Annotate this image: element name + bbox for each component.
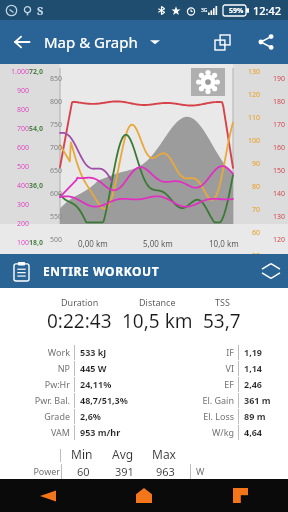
button[interactable]: Map & Graph	[44, 32, 160, 52]
staticText: 59%	[229, 6, 244, 16]
button[interactable]: ENTIRE WORKOUT	[0, 254, 288, 288]
staticText: Map & Graph	[44, 32, 138, 52]
staticText: 2,6%	[80, 410, 101, 422]
staticText: 72,0	[29, 67, 44, 77]
staticText: 80	[243, 182, 260, 192]
staticText: Pwr. Bal.	[34, 394, 70, 406]
staticText: ENTIRE WORKOUT	[43, 263, 160, 279]
staticText: 89 m	[244, 410, 266, 422]
staticText: VAM	[51, 426, 70, 438]
staticText: 60	[77, 464, 90, 479]
staticText: W	[196, 465, 205, 477]
staticText: NP	[57, 362, 70, 374]
staticText: 750	[44, 120, 62, 130]
staticText: 190	[265, 74, 285, 84]
staticText: 140	[265, 189, 285, 199]
staticText: EF	[224, 378, 234, 390]
button[interactable]: Back	[0, 479, 96, 512]
staticText: 3G	[201, 7, 208, 14]
staticText: 200	[3, 219, 29, 229]
button[interactable]: Recent apps	[192, 479, 288, 512]
staticText: 600	[3, 143, 29, 153]
staticText: 110	[243, 113, 260, 123]
staticText: 130	[265, 212, 285, 222]
staticText: 180	[265, 97, 285, 107]
staticText: 10,0 km	[209, 238, 239, 249]
staticText: Pw:Hr	[44, 378, 70, 390]
staticText: 100	[3, 238, 29, 248]
staticText: 170	[265, 120, 285, 130]
staticText: 24,11%	[80, 378, 112, 390]
staticText: 5,00 km	[143, 238, 173, 249]
staticText: 120	[243, 90, 260, 100]
staticText: 2,46	[244, 378, 263, 390]
staticText: Duration	[61, 296, 99, 308]
staticText: 1,14	[244, 362, 263, 374]
staticText: 600	[44, 189, 62, 199]
staticText: 160	[265, 143, 285, 153]
staticText: 963	[156, 464, 175, 479]
staticText: El. Gain	[202, 394, 234, 406]
button[interactable]: Back	[0, 20, 44, 64]
staticText: IF	[226, 346, 234, 358]
staticText: 10,5 km	[122, 308, 193, 334]
staticText: 130	[243, 67, 260, 77]
staticText: 700	[44, 143, 62, 153]
staticText: 300	[3, 200, 29, 210]
staticText: 850	[44, 74, 62, 84]
staticText: 53,7	[203, 308, 241, 334]
staticText: TSS	[215, 296, 230, 308]
staticText: 650	[44, 166, 62, 176]
staticText: 800	[44, 97, 62, 107]
staticText: El. Loss	[203, 410, 234, 422]
staticText: 391	[115, 464, 134, 479]
staticText: Min	[71, 446, 93, 462]
staticText: 90	[243, 159, 260, 169]
staticText: Grade	[44, 410, 70, 422]
staticText: 361 m	[244, 394, 271, 406]
staticText: 550	[44, 212, 62, 222]
staticText: W/kg	[211, 426, 234, 438]
staticText: Max	[152, 446, 176, 462]
staticText: 953 m/hr	[80, 426, 121, 438]
staticText: S	[37, 3, 44, 18]
staticText: 800	[3, 105, 29, 115]
staticText: 500	[44, 235, 62, 245]
staticText: 100	[243, 136, 260, 146]
staticText: Work	[47, 346, 70, 358]
staticText: 0,00 km	[78, 238, 108, 249]
staticText: 4,64	[244, 426, 263, 438]
staticText: 500	[3, 162, 29, 172]
staticText: 60	[243, 228, 260, 238]
staticText: 120	[265, 235, 285, 245]
staticText: 150	[265, 166, 285, 176]
staticText: 18,0	[29, 238, 44, 248]
button[interactable]: Home	[96, 479, 192, 512]
staticText: 445 W	[80, 362, 107, 374]
staticText: VI	[225, 362, 234, 374]
staticText: Distance	[139, 296, 176, 308]
staticText: Power	[33, 465, 60, 477]
staticText: 50	[243, 251, 260, 254]
staticText: Avg	[112, 446, 134, 462]
staticText: 700	[3, 124, 29, 134]
staticText: 400	[3, 181, 29, 191]
staticText: 900	[3, 86, 29, 96]
staticText: 48,7/51,3%	[80, 394, 128, 406]
staticText: 0:22:43	[47, 308, 112, 334]
staticText: 533 kJ	[80, 346, 107, 358]
staticText: 12:42	[253, 3, 282, 18]
button[interactable]: Expand	[254, 254, 288, 288]
staticText: 70	[243, 205, 260, 215]
staticText: 1.000	[3, 67, 29, 77]
staticText: 36,0	[29, 181, 44, 191]
staticText: 1,19	[244, 346, 263, 358]
button[interactable]: Share	[244, 20, 288, 64]
staticText: 54,0	[29, 124, 44, 134]
button[interactable]: Copy	[200, 20, 244, 64]
